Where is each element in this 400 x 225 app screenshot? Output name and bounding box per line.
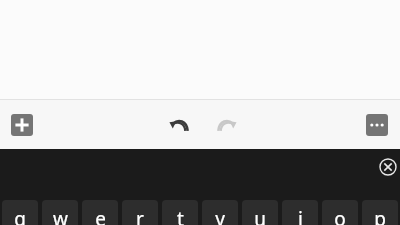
staticText: e [95,206,106,225]
button[interactable]: q [2,200,38,225]
button[interactable]: Redo [212,113,240,141]
staticText: q [14,206,26,225]
button[interactable]: Add [11,114,33,136]
button[interactable]: r [122,200,158,225]
button[interactable]: o [322,200,358,225]
button[interactable]: p [362,200,398,225]
button[interactable]: w [42,200,78,225]
button[interactable]: y [202,200,238,225]
staticText: u [254,206,266,225]
staticText: r [136,206,144,225]
button[interactable]: Close keyboard suggestions [374,153,400,181]
button[interactable]: t [162,200,198,225]
staticText: i [298,206,303,225]
staticText: p [374,206,386,225]
staticText: y [215,206,225,225]
staticText: w [53,206,68,225]
button[interactable]: More options [366,114,388,136]
staticText: o [334,206,346,225]
button[interactable]: i [282,200,318,225]
staticText: t [177,206,184,225]
button[interactable]: Undo [166,113,194,141]
button[interactable]: e [82,200,118,225]
button[interactable]: u [242,200,278,225]
